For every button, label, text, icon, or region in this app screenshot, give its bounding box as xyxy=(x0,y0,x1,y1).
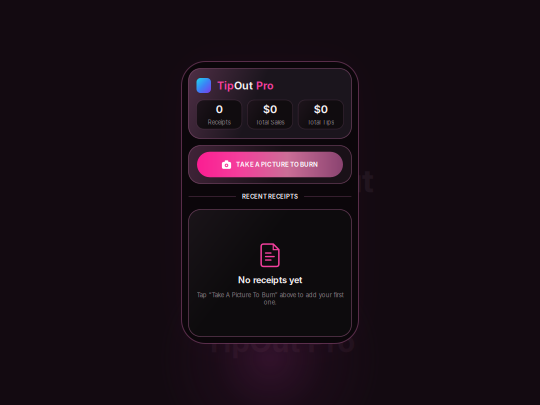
staticText: Total Sales xyxy=(255,119,284,126)
staticText: Tap “Take A Picture To Burn” above to ad… xyxy=(196,291,343,306)
staticText: 0 xyxy=(216,103,223,116)
staticText: TipOut Pro xyxy=(204,324,355,359)
staticText: No receipts yet xyxy=(238,274,302,285)
staticText: T A K E A P I C T U R E T O B U R N xyxy=(236,161,318,168)
staticText: Tip xyxy=(217,79,234,92)
button[interactable]: T A K E A P I C T U R E T O B U R N xyxy=(197,152,343,177)
staticText: Total Tips xyxy=(307,119,334,126)
staticText: R E C E N T R E C E I P T S xyxy=(242,193,298,200)
staticText: Pro xyxy=(253,79,274,92)
staticText: Out xyxy=(234,79,253,92)
staticText: Receipts xyxy=(208,119,231,126)
staticText: $0 xyxy=(314,103,328,116)
staticText: TipOut xyxy=(270,161,374,200)
staticText: $0 xyxy=(263,103,277,116)
